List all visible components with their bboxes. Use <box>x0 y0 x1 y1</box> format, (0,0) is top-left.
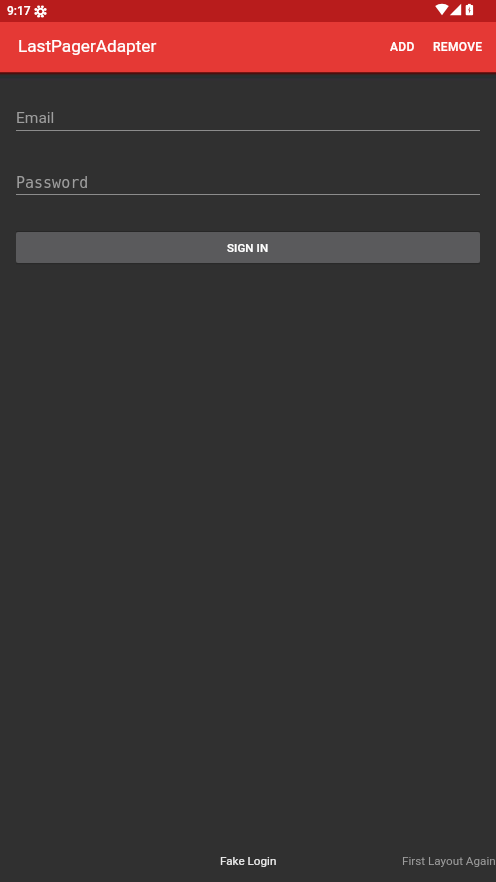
staticText: LastPagerAdapter <box>18 36 157 56</box>
staticText: ADD <box>390 40 415 54</box>
staticText: REMOVE <box>433 40 483 54</box>
staticText: Fake Login <box>220 854 277 868</box>
staticText: Email <box>16 109 55 127</box>
button[interactable]: Fake Login <box>212 854 285 868</box>
button[interactable]: REMOVE <box>425 26 496 68</box>
staticText: Password <box>16 174 89 191</box>
staticText: First Layout Again <box>402 854 496 868</box>
staticText: SIGN IN <box>227 241 269 254</box>
button[interactable]: First Layout Again <box>402 854 496 868</box>
button[interactable]: SIGN IN <box>16 232 480 263</box>
staticText: 9:17 <box>7 4 31 18</box>
button[interactable]: Password <box>16 174 480 195</box>
button[interactable]: ADD <box>382 26 425 68</box>
button[interactable]: Email <box>16 109 480 131</box>
other: Wifi, mobile signal and battery status <box>0 0 496 22</box>
other: Settings <box>35 6 46 17</box>
